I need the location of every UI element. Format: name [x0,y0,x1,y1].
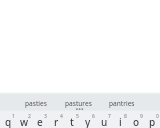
staticText: 3 [44,113,47,120]
button[interactable]: pantries [100,95,144,109]
staticText: r [54,115,59,128]
staticText: y [85,115,91,128]
button[interactable]: 6 [80,110,96,128]
staticText: pastures [65,99,92,108]
staticText: t [70,115,74,128]
button[interactable]: 8 [112,110,128,128]
staticText: pantries [109,99,135,108]
staticText: e [37,115,43,128]
button[interactable]: 4 [48,110,64,128]
staticText: o [133,115,140,128]
staticText: 6 [92,113,95,120]
button[interactable]: pasties [14,95,58,109]
staticText: 9 [140,113,143,120]
button[interactable]: 2 [16,110,32,128]
button[interactable]: 7 [96,110,112,128]
staticText: 4 [60,113,63,120]
staticText: w [20,115,29,128]
staticText: 7 [108,113,111,120]
staticText: 5 [76,113,79,120]
button[interactable]: 9 [128,110,144,128]
staticText: 0 [156,113,159,120]
staticText: i [119,115,122,128]
staticText: 8 [124,113,127,120]
staticText: p [149,115,156,128]
button[interactable]: 3 [32,110,48,128]
staticText: pasties [25,99,47,108]
staticText: 1 [12,113,15,120]
button[interactable]: pastures [56,95,100,109]
button[interactable]: 1 [0,110,16,128]
staticText: u [101,115,108,128]
button[interactable]: 5 [64,110,80,128]
button[interactable]: 0 [144,110,160,128]
button[interactable]: More suggestions [72,104,87,110]
staticText: q [5,115,12,128]
staticText: 2 [28,113,31,120]
